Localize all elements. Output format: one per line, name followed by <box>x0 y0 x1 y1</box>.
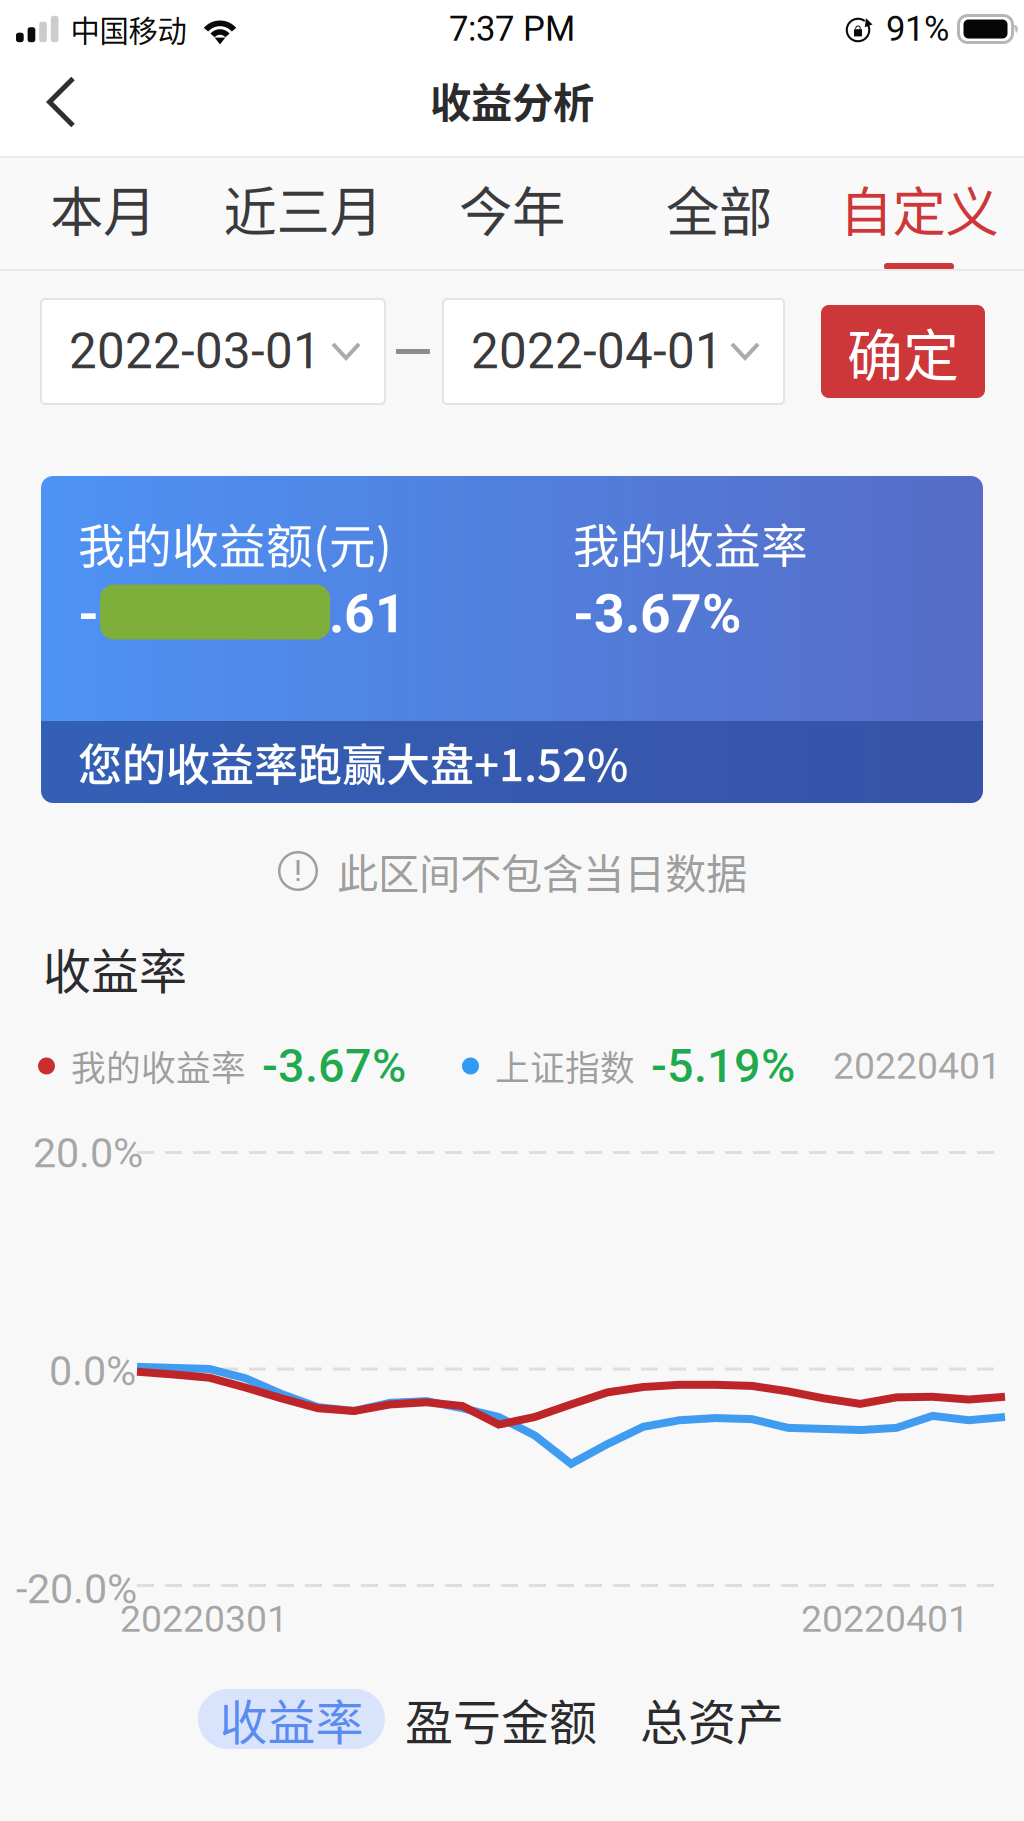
staticText: -20.0% <box>16 1565 137 1613</box>
button[interactable]: 全部 <box>624 158 814 269</box>
button[interactable]: 近三月 <box>206 158 400 269</box>
staticText: 确定 <box>847 311 959 392</box>
staticText: 0.0% <box>49 1347 136 1395</box>
staticText: - <box>78 583 99 645</box>
button[interactable]: 收益率 <box>198 1689 385 1749</box>
button[interactable]: 盈亏金额 <box>385 1689 617 1749</box>
button[interactable]: Back <box>0 58 122 156</box>
staticText: 20220301 <box>120 1597 288 1641</box>
staticText: 20220401 <box>833 1044 1001 1088</box>
staticText: -3.67% <box>262 1039 406 1093</box>
staticText: 我的收益率 <box>573 509 808 577</box>
button[interactable]: 自定义 <box>814 158 1024 269</box>
staticText: 2022-04-01 <box>471 323 723 380</box>
staticText: 我的收益率 <box>71 1041 246 1091</box>
staticText: 中国移动 <box>70 8 186 50</box>
staticText: .61 <box>329 583 406 645</box>
staticText: 全部 <box>666 170 772 247</box>
staticText: 自定义 <box>839 170 998 247</box>
staticText: 近三月 <box>223 170 382 247</box>
staticText: 我的收益额(元) <box>78 509 392 577</box>
staticText: 20220401 <box>801 1597 969 1641</box>
staticText: -5.19% <box>651 1039 795 1093</box>
staticText: 91% <box>886 9 949 49</box>
button[interactable]: 确定 <box>821 305 985 398</box>
button[interactable]: 2022-03-01 <box>41 299 385 404</box>
staticText: 收益分析 <box>430 70 594 130</box>
staticText: 此区间不包含当日数据 <box>337 841 747 901</box>
staticText: 本月 <box>50 170 156 247</box>
staticText: 今年 <box>459 170 565 247</box>
staticText: 7:37 PM <box>449 9 575 49</box>
staticText: 您的收益率跑赢大盘+1.52% <box>78 730 628 794</box>
staticText: 上证指数 <box>495 1041 635 1091</box>
staticText: 盈亏金额 <box>405 1684 597 1754</box>
button[interactable]: 总资产 <box>617 1689 807 1749</box>
staticText: 总资产 <box>640 1684 784 1754</box>
button[interactable]: 2022-04-01 <box>443 299 784 404</box>
staticText: 收益率 <box>219 1684 363 1754</box>
staticText: -3.67% <box>573 583 741 645</box>
button[interactable]: 本月 <box>0 158 206 269</box>
staticText: 20.0% <box>33 1129 143 1177</box>
button[interactable]: 今年 <box>400 158 624 269</box>
staticText: 收益率 <box>43 933 187 1003</box>
staticText: 2022-03-01 <box>69 323 321 380</box>
